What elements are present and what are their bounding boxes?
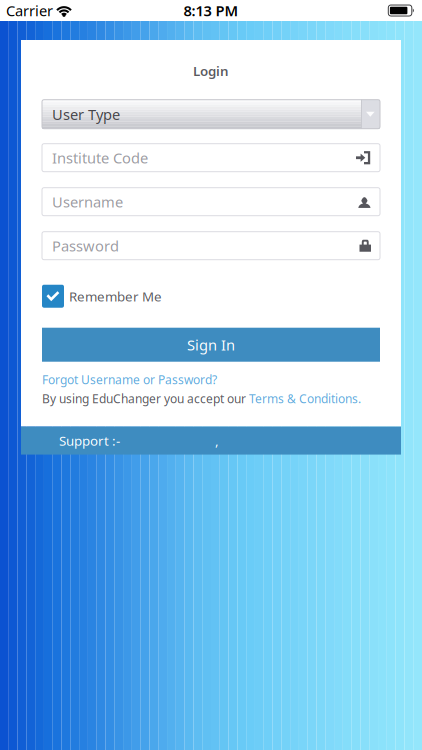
staticText: Institute Code: [52, 148, 148, 167]
button[interactable]: Forgot Username or Password?: [42, 372, 380, 388]
staticText: Remember Me: [69, 287, 162, 305]
button[interactable]: Terms & Conditions.: [249, 391, 361, 406]
staticText: ,: [215, 432, 219, 449]
button[interactable]: User Type: [42, 100, 380, 129]
staticText: Support :-: [59, 432, 120, 449]
staticText: Password: [52, 236, 119, 255]
staticText: Login: [193, 62, 229, 80]
staticText: 8:13 PM: [183, 1, 238, 20]
button[interactable]: Password: [42, 232, 380, 260]
button[interactable]: Support :-: [21, 427, 401, 455]
button[interactable]: Remember Me: [42, 285, 380, 308]
staticText: Carrier: [6, 1, 53, 20]
staticText: By using EduChanger you accept our: [42, 391, 249, 406]
staticText: Sign In: [187, 335, 235, 354]
button[interactable]: Sign In: [42, 328, 380, 362]
staticText: Username: [52, 192, 123, 211]
button[interactable]: Institute Code: [42, 144, 380, 172]
staticText: User Type: [52, 104, 120, 124]
staticText: Forgot Username or Password?: [42, 372, 217, 388]
button[interactable]: Username: [42, 188, 380, 216]
staticText: Terms & Conditions.: [249, 391, 361, 406]
